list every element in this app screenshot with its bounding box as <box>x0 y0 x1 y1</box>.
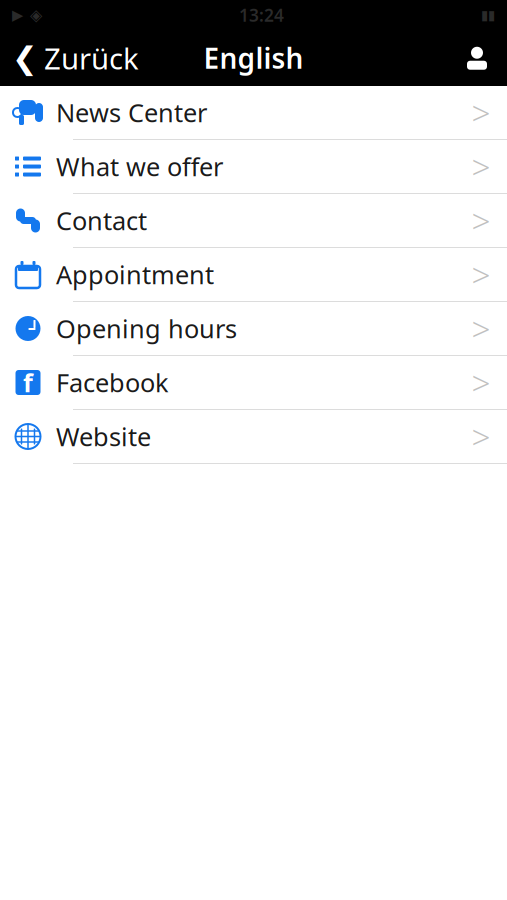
staticText: News Center <box>56 96 207 129</box>
staticText: Opening hours <box>56 312 237 345</box>
staticText: ▶ <box>12 7 23 23</box>
staticText: Contact <box>56 204 147 237</box>
staticText: ❮ <box>12 41 38 75</box>
staticText: > <box>471 198 490 243</box>
button[interactable]: News Center <box>0 86 507 140</box>
staticText: Website <box>56 420 151 453</box>
button[interactable]: Opening hours <box>0 302 507 356</box>
staticText: 13:24 <box>239 3 284 26</box>
staticText: ◈ <box>30 6 42 24</box>
button[interactable]: Website <box>0 410 507 464</box>
staticText: Facebook <box>56 366 169 399</box>
staticText: > <box>471 414 490 459</box>
button[interactable]: What we offer <box>0 140 507 194</box>
staticText: f <box>23 366 33 399</box>
staticText: Zurück <box>44 38 139 77</box>
staticText: > <box>471 306 490 351</box>
staticText: > <box>471 144 490 189</box>
staticText: > <box>471 90 490 135</box>
staticText: English <box>203 39 303 77</box>
button[interactable]: Contact <box>0 194 507 248</box>
staticText: ▮▮ <box>481 7 495 22</box>
button[interactable]: f <box>0 356 507 410</box>
button[interactable]: Appointment <box>0 248 507 302</box>
staticText: What we offer <box>56 150 223 183</box>
staticText: > <box>471 360 490 405</box>
staticText: Appointment <box>56 258 214 291</box>
staticText: > <box>471 252 490 297</box>
button[interactable]: Account <box>463 37 507 79</box>
button[interactable]: ❮ <box>0 30 139 85</box>
